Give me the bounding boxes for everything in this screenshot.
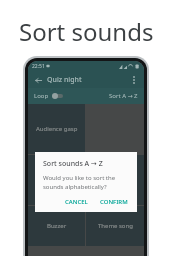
staticText: CONFIRM (100, 198, 128, 206)
button[interactable] (28, 155, 85, 205)
button[interactable] (86, 155, 144, 205)
staticText: Loop (34, 92, 49, 100)
staticText: Sort A → Z (109, 92, 138, 100)
staticText: Quiz night (47, 75, 82, 85)
button[interactable]: Buzzer (28, 206, 85, 246)
staticText: Sort sounds A → Z (43, 159, 103, 169)
button[interactable]: Loop (34, 92, 63, 100)
staticText: Buzzer (47, 222, 67, 230)
staticText: Would you like to sort the sounds alphab… (43, 174, 132, 190)
button[interactable]: Theme song (86, 206, 144, 246)
staticText: 22:51 (32, 63, 45, 70)
button[interactable]: Back (32, 74, 44, 86)
staticText: Theme song (98, 222, 133, 230)
button[interactable]: CANCEL (61, 195, 92, 209)
button[interactable]: Audience gasp (28, 104, 85, 154)
staticText: Audience gasp (36, 125, 78, 133)
button[interactable]: CONFIRM (96, 195, 132, 209)
staticText: CANCEL (65, 198, 88, 206)
button[interactable]: Sort A → Z (109, 92, 138, 100)
button[interactable]: More options (128, 74, 140, 86)
button[interactable] (86, 104, 144, 154)
staticText: Sort sounds (19, 15, 154, 48)
